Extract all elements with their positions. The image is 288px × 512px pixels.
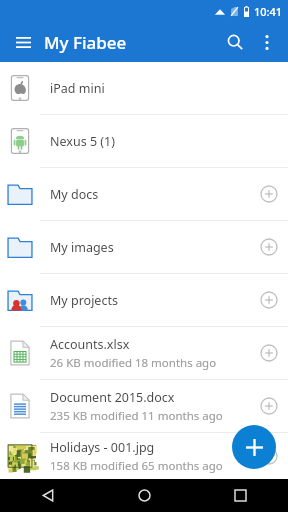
staticText: 235 KB modified 11 months ago (50, 408, 223, 424)
staticText: My images (50, 239, 114, 256)
button[interactable]: Add to Holidays - 001.jpg (250, 433, 288, 479)
button[interactable]: Open navigation drawer (8, 27, 38, 57)
button[interactable]: Search (218, 25, 252, 59)
button[interactable]: Add to My projects (250, 274, 288, 326)
staticText: Holidays - 001.jpg (50, 439, 155, 456)
staticText: Nexus 5 (1) (50, 133, 115, 150)
button[interactable]: Add new item (232, 425, 276, 469)
staticText: iPad mini (50, 80, 105, 97)
button[interactable]: Accounts.xlsx (0, 327, 288, 379)
staticText: My projects (50, 292, 118, 309)
staticText: 158 KB modified 65 months ago (50, 458, 223, 474)
button[interactable]: More options (252, 27, 282, 57)
staticText: 10:41 (254, 4, 283, 19)
button[interactable]: Add to Accounts.xlsx (250, 327, 288, 379)
button[interactable]: Recent apps (192, 479, 288, 512)
button[interactable]: My projects (0, 274, 288, 326)
button[interactable]: Nexus 5 (1) (0, 115, 288, 167)
button[interactable]: iPad mini (0, 62, 288, 114)
button[interactable]: Add to Document 2015.docx (250, 380, 288, 432)
button[interactable]: Add to My docs (250, 168, 288, 220)
button[interactable]: Document 2015.docx (0, 380, 288, 432)
button[interactable]: My docs (0, 168, 288, 220)
button[interactable]: Home (96, 479, 192, 512)
button[interactable]: Back (0, 479, 96, 512)
staticText: 26 KB modified 18 months ago (50, 355, 217, 371)
button[interactable]: Add to My images (250, 221, 288, 273)
button[interactable]: My images (0, 221, 288, 273)
staticText: My Fiabee (44, 31, 127, 54)
staticText: Document 2015.docx (50, 389, 175, 406)
staticText: My docs (50, 186, 99, 203)
button[interactable]: Holidays - 001.jpg (0, 433, 288, 479)
staticText: Accounts.xlsx (50, 336, 130, 353)
